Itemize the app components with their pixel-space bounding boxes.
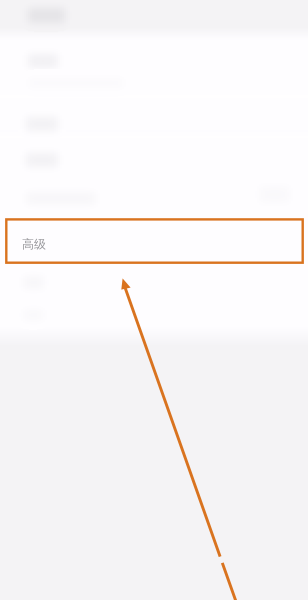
button[interactable]: 高级	[6, 219, 302, 263]
staticText: 高级	[22, 237, 46, 251]
